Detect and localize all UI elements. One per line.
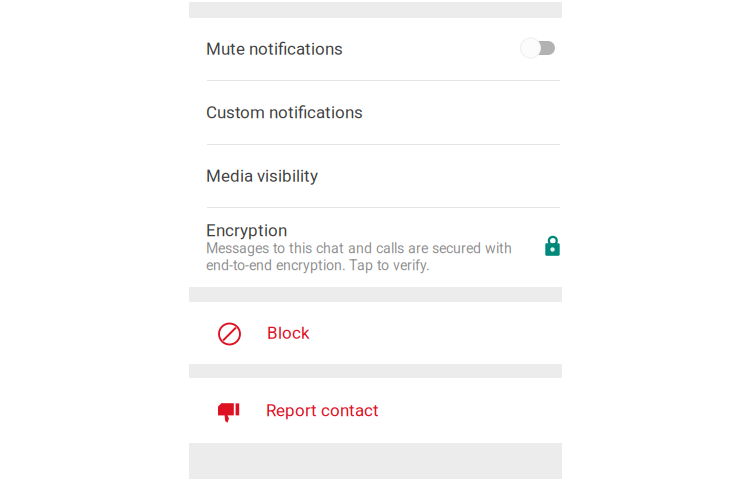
staticText: Custom notifications [206,103,363,122]
button[interactable]: Custom notifications [189,81,562,144]
button[interactable]: Block [189,302,562,364]
button[interactable]: Report contact [189,378,562,443]
button[interactable]: Media visibility [189,145,562,207]
button[interactable]: Mute notifications [189,18,562,80]
button[interactable]: Encryption [189,208,562,287]
staticText: Block [267,323,310,343]
staticText: Mute notifications [206,39,343,59]
staticText: Messages to this chat and calls are secu… [206,240,512,257]
staticText: Report contact [266,401,379,420]
staticText: Encryption [206,221,287,240]
staticText: end-to-end encryption. Tap to verify. [206,257,430,274]
staticText: Media visibility [206,166,318,186]
